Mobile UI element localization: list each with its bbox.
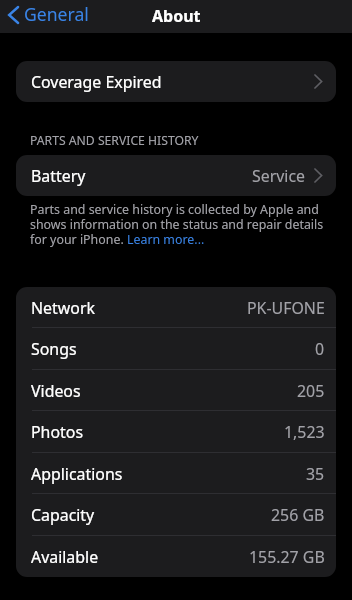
other: Open bbox=[314, 169, 322, 182]
button[interactable]: Coverage Expired bbox=[16, 61, 336, 102]
button[interactable]: Capacity bbox=[16, 494, 336, 536]
staticText: Songs bbox=[31, 338, 77, 360]
staticText: 0 bbox=[315, 338, 325, 360]
button[interactable]: Back to General bbox=[0, 0, 97, 29]
staticText: 1,523 bbox=[284, 421, 325, 443]
staticText: PARTS AND SERVICE HISTORY bbox=[30, 132, 199, 149]
staticText: 35 bbox=[306, 463, 325, 485]
button[interactable]: Battery bbox=[16, 155, 336, 196]
button[interactable]: Songs bbox=[16, 328, 336, 370]
staticText: Available bbox=[31, 546, 99, 568]
button[interactable]: Photos bbox=[16, 411, 336, 453]
staticText: PK-UFONE bbox=[247, 297, 325, 319]
staticText: General bbox=[24, 2, 89, 26]
staticText: Battery bbox=[31, 165, 86, 187]
staticText: About bbox=[152, 5, 201, 27]
staticText: Videos bbox=[31, 380, 81, 402]
button[interactable]: Network bbox=[16, 287, 336, 328]
staticText: Capacity bbox=[31, 504, 95, 526]
staticText: Applications bbox=[31, 463, 123, 485]
staticText: Network bbox=[31, 297, 95, 319]
button[interactable]: Videos bbox=[16, 370, 336, 411]
staticText: 256 GB bbox=[271, 504, 325, 526]
staticText: Photos bbox=[31, 421, 84, 443]
button[interactable]: Applications bbox=[16, 453, 336, 494]
staticText: Parts and service history is collected b… bbox=[30, 201, 332, 247]
staticText: 155.27 GB bbox=[249, 546, 325, 568]
other: Open bbox=[314, 75, 322, 88]
staticText: Coverage Expired bbox=[31, 71, 162, 93]
staticText: Service bbox=[252, 165, 306, 187]
staticText: 205 bbox=[297, 380, 325, 402]
button[interactable]: Available bbox=[16, 536, 336, 577]
